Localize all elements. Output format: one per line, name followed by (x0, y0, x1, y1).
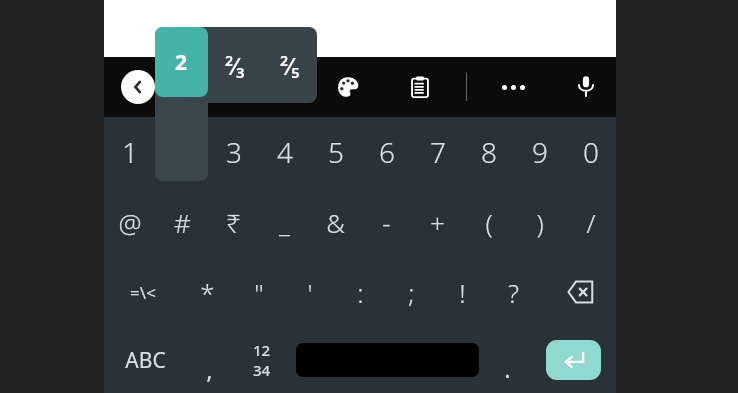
staticText: ! (459, 275, 466, 310)
staticText: & (326, 205, 345, 240)
button[interactable]: ; (386, 257, 437, 327)
staticText: 34 (253, 360, 271, 380)
button[interactable]: : (335, 257, 386, 327)
staticText: 3 (226, 133, 242, 171)
button[interactable]: Voice input (570, 70, 602, 102)
button[interactable]: . (484, 327, 530, 393)
button[interactable]: =\< (104, 257, 182, 327)
staticText: 4 (277, 133, 293, 171)
staticText: ²⁄₅ (280, 50, 300, 81)
staticText: ( (485, 205, 493, 240)
staticText: : (357, 275, 364, 310)
staticText: ' (307, 275, 313, 310)
button[interactable]: ₹ (208, 187, 259, 257)
staticText: 8 (481, 133, 497, 171)
button[interactable]: 4 (259, 117, 310, 187)
button[interactable]: ! (437, 257, 488, 327)
button[interactable]: , (186, 327, 232, 393)
button[interactable]: * (182, 257, 233, 327)
staticText: _ (279, 205, 290, 240)
staticText: / (586, 205, 596, 240)
button[interactable]: + (412, 187, 463, 257)
button[interactable]: Numbers (232, 327, 291, 393)
button[interactable]: Space (296, 343, 479, 377)
button[interactable]: " (233, 257, 284, 327)
staticText: =\< (130, 281, 156, 304)
staticText: . (504, 352, 511, 385)
button[interactable]: 0 (565, 117, 616, 187)
button[interactable]: 5 (310, 117, 361, 187)
button[interactable]: - (361, 187, 412, 257)
staticText: # (174, 205, 191, 240)
button[interactable]: ' (284, 257, 335, 327)
button[interactable]: 8 (463, 117, 514, 187)
button[interactable]: ²⁄₅ (262, 27, 317, 103)
staticText: - (382, 205, 391, 240)
button[interactable]: 6 (361, 117, 412, 187)
staticText: ₹ (226, 205, 241, 240)
staticText: " (254, 275, 264, 310)
staticText: 12 (253, 340, 271, 360)
staticText: * (200, 275, 215, 310)
button[interactable]: ( (463, 187, 514, 257)
button[interactable]: Clipboard (404, 71, 436, 103)
button[interactable]: 9 (514, 117, 565, 187)
button[interactable]: _ (259, 187, 310, 257)
button[interactable]: / (565, 187, 616, 257)
button[interactable]: 2 (156, 117, 208, 187)
button[interactable]: Theme (332, 71, 364, 103)
button[interactable]: ? (488, 257, 539, 327)
button[interactable]: ) (514, 187, 565, 257)
staticText: , (206, 353, 213, 386)
staticText: + (430, 205, 445, 240)
button[interactable]: # (156, 187, 208, 257)
button[interactable]: 7 (412, 117, 463, 187)
button[interactable]: 3 (208, 117, 259, 187)
staticText: @ (118, 205, 142, 240)
button[interactable]: More options (497, 71, 529, 103)
staticText: ) (536, 205, 544, 240)
button[interactable]: Back (121, 70, 155, 104)
staticText: 9 (532, 133, 548, 171)
button[interactable]: & (310, 187, 361, 257)
button[interactable]: @ (104, 187, 156, 257)
staticText: ABC (125, 346, 166, 375)
button[interactable]: Enter (546, 340, 601, 380)
staticText: ? (508, 275, 519, 310)
staticText: 1 (122, 133, 138, 171)
staticText: ; (408, 275, 415, 310)
staticText: ²⁄₃ (225, 50, 245, 81)
button[interactable]: 2 (155, 27, 208, 97)
button[interactable]: ²⁄₃ (208, 27, 262, 103)
button[interactable]: ABC (104, 327, 186, 393)
staticText: 5 (328, 133, 344, 171)
staticText: 7 (430, 133, 446, 171)
staticText: 2 (175, 48, 188, 77)
staticText: 0 (583, 133, 599, 171)
button[interactable]: Backspace (539, 257, 616, 327)
staticText: 6 (379, 133, 395, 171)
button[interactable]: 1 (104, 117, 156, 187)
